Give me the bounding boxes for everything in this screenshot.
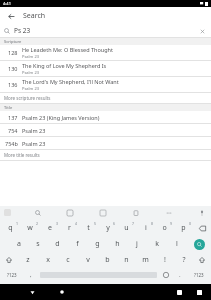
staticText: 7 <box>132 221 135 226</box>
button[interactable]: n <box>117 252 136 268</box>
staticText: i <box>145 223 147 233</box>
button[interactable]: 754b <box>0 137 211 150</box>
staticText: z <box>26 255 30 265</box>
button[interactable]: ? <box>174 252 193 268</box>
button[interactable]: Search <box>187 236 211 252</box>
button[interactable]: r <box>60 220 79 236</box>
button[interactable]: i <box>136 220 155 236</box>
staticText: Psalm 23 <box>22 127 46 134</box>
staticText: j <box>136 239 138 249</box>
staticText: f <box>76 239 79 249</box>
button[interactable]: Backspace <box>193 220 211 236</box>
staticText: ?123 <box>7 272 17 278</box>
button[interactable]: Ps 23 <box>0 24 211 37</box>
button[interactable]: 136 <box>0 77 211 93</box>
button[interactable]: 130 <box>0 61 211 77</box>
staticText: l <box>176 239 178 249</box>
button[interactable]: k <box>147 236 167 252</box>
staticText: q <box>8 223 13 233</box>
staticText: Psalm 23 (King James Version) <box>22 114 100 121</box>
button[interactable]: Shift <box>0 252 18 268</box>
staticText: ! <box>164 255 166 265</box>
staticText: 754b <box>5 140 18 147</box>
button[interactable]: c <box>58 252 78 268</box>
staticText: ? <box>182 255 186 265</box>
staticText: 0 <box>189 221 192 226</box>
button[interactable]: Emoji <box>159 268 173 282</box>
button[interactable]: a <box>9 236 28 252</box>
button[interactable]: z <box>18 252 38 268</box>
button[interactable]: y <box>98 220 117 236</box>
button[interactable]: Screenshot <box>173 286 185 298</box>
staticText: e <box>48 223 52 233</box>
staticText: 6 <box>113 221 116 226</box>
staticText: g <box>95 239 100 249</box>
button[interactable]: p <box>174 220 193 236</box>
button[interactable]: Home <box>56 286 68 298</box>
staticText: 2 <box>36 221 39 226</box>
staticText: a <box>17 239 21 249</box>
staticText: 754 <box>8 127 18 134</box>
staticText: x <box>46 255 50 265</box>
button[interactable]: ! <box>155 252 174 268</box>
staticText: m <box>142 255 149 265</box>
button[interactable]: m <box>136 252 155 268</box>
button[interactable]: More title results <box>0 150 211 161</box>
button[interactable]: t <box>79 220 98 236</box>
staticText: 3 <box>56 221 59 226</box>
staticText: Psalm 23 <box>22 70 39 75</box>
staticText: 137 <box>8 114 18 121</box>
staticText: More title results <box>4 152 40 158</box>
button[interactable]: Back <box>26 286 38 298</box>
button[interactable]: w <box>20 220 40 236</box>
button[interactable]: Recents <box>193 286 205 298</box>
button[interactable]: ?123 <box>0 268 24 282</box>
staticText: Ps 23 <box>14 26 31 35</box>
button[interactable]: x <box>38 252 58 268</box>
button[interactable]: f <box>67 236 87 252</box>
button[interactable]: More scripture results <box>0 93 211 104</box>
staticText: More scripture results <box>4 95 51 101</box>
staticText: b <box>105 255 110 265</box>
button[interactable]: e <box>40 220 60 236</box>
button[interactable]: Clipboard <box>130 207 141 218</box>
staticText: y <box>106 223 110 233</box>
button[interactable]: Period <box>173 268 187 282</box>
button[interactable]: d <box>47 236 67 252</box>
button[interactable]: GIF <box>97 207 108 218</box>
button[interactable]: u <box>117 220 136 236</box>
button[interactable]: 754 <box>0 124 211 137</box>
staticText: Psalm 23 <box>22 54 39 59</box>
staticText: Title <box>4 105 13 110</box>
button[interactable]: v <box>78 252 98 268</box>
staticText: He Leadeth Me: O Blessed Thought <box>22 46 113 53</box>
button[interactable]: o <box>155 220 174 236</box>
staticText: n <box>124 255 129 265</box>
button[interactable]: Stickers <box>64 207 75 218</box>
button[interactable]: Shift right <box>193 252 211 268</box>
staticText: Scripture <box>4 39 22 44</box>
staticText: h <box>115 239 120 249</box>
staticText: r <box>68 223 71 233</box>
button[interactable]: l <box>167 236 187 252</box>
button[interactable]: Settings <box>163 207 174 218</box>
button[interactable]: j <box>127 236 147 252</box>
button[interactable]: 128 <box>0 45 211 61</box>
staticText: c <box>66 255 70 265</box>
button[interactable]: q <box>0 220 20 236</box>
button[interactable]: Clear <box>196 25 208 37</box>
button[interactable]: Back <box>4 9 18 23</box>
button[interactable]: s <box>28 236 47 252</box>
staticText: 4:41 <box>3 1 11 6</box>
button[interactable]: Comma <box>24 268 38 282</box>
staticText: 136 <box>8 81 18 88</box>
button[interactable]: g <box>87 236 107 252</box>
button[interactable]: ?123 <box>187 268 211 282</box>
button[interactable]: Search <box>32 207 43 218</box>
button[interactable]: 137 <box>0 111 211 124</box>
button[interactable]: Voice <box>196 207 207 218</box>
button[interactable]: b <box>98 252 117 268</box>
button[interactable]: h <box>107 236 127 252</box>
